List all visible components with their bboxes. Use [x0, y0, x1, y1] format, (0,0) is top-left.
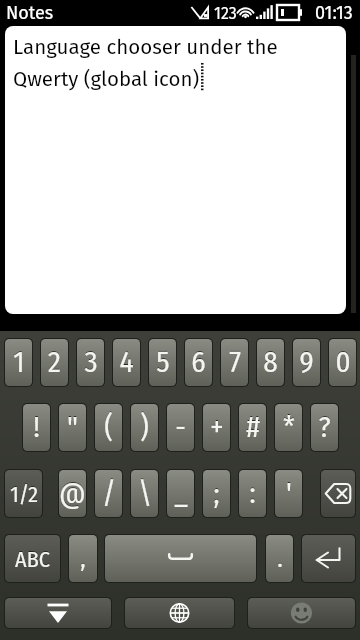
staticText: Language chooser under the	[13, 35, 278, 60]
button[interactable]: 3	[76, 338, 105, 387]
staticText: :	[249, 476, 256, 511]
staticText: 1/2	[10, 480, 38, 506]
button[interactable]: 1/2	[4, 469, 43, 518]
staticText: 5	[156, 345, 170, 380]
staticText: 2	[48, 344, 61, 379]
staticText: '	[286, 476, 292, 511]
staticText: \	[138, 476, 152, 511]
staticText: ?	[318, 410, 331, 445]
staticText: Qwerty (global icon)	[13, 67, 200, 92]
staticText: 4	[119, 345, 134, 380]
staticText: ,	[80, 543, 86, 574]
staticText: 3	[84, 344, 98, 379]
staticText: ABC	[15, 546, 50, 572]
button[interactable]: @	[58, 469, 87, 518]
staticText: .	[277, 543, 283, 574]
button[interactable]: Emoticons	[247, 597, 356, 629]
staticText: ?	[318, 409, 331, 444]
staticText: :	[249, 475, 256, 510]
staticText: 0	[335, 344, 351, 379]
staticText: 6	[191, 345, 206, 380]
staticText: ABC	[15, 545, 50, 571]
button[interactable]: ?	[310, 403, 339, 452]
staticText: 01:13	[315, 2, 353, 24]
staticText: '	[286, 475, 292, 510]
button[interactable]: 1	[4, 338, 33, 387]
button[interactable]: /	[94, 469, 123, 518]
staticText: 2	[48, 345, 61, 380]
button[interactable]: #	[238, 403, 267, 452]
staticText: 123	[214, 4, 237, 23]
staticText: @	[59, 476, 86, 511]
button[interactable]: )	[130, 403, 159, 452]
staticText: !	[33, 410, 40, 445]
staticText: 3	[84, 345, 98, 380]
staticText: !	[33, 409, 40, 444]
button[interactable]: 7	[220, 338, 249, 387]
staticText: _	[174, 476, 188, 511]
button[interactable]: !	[22, 403, 51, 452]
staticText: @	[59, 475, 86, 510]
button[interactable]: ABC	[4, 534, 61, 583]
button[interactable]: 6	[184, 338, 213, 387]
button[interactable]: (	[94, 403, 123, 452]
button[interactable]: 0	[328, 338, 357, 387]
button[interactable]: 8	[256, 338, 285, 387]
staticText: 9	[299, 344, 314, 379]
staticText: )	[140, 410, 149, 445]
staticText: ;	[213, 476, 220, 511]
button[interactable]: Enter	[301, 534, 356, 583]
staticText: ,	[80, 542, 86, 573]
staticText: ;	[213, 475, 220, 510]
staticText: *	[283, 409, 295, 444]
staticText: 8	[263, 344, 278, 379]
staticText: #	[246, 409, 260, 444]
button[interactable]: 5	[148, 338, 177, 387]
button[interactable]: Language chooser under the	[5, 26, 346, 314]
staticText: 7	[229, 345, 241, 380]
button[interactable]: -	[166, 403, 195, 452]
button[interactable]: Change language	[124, 597, 235, 629]
staticText: #	[246, 410, 260, 445]
staticText: _	[174, 475, 188, 510]
button[interactable]: +	[202, 403, 231, 452]
staticText: 0	[335, 345, 351, 380]
button[interactable]: 4	[112, 338, 141, 387]
button[interactable]: Space	[104, 534, 257, 583]
button[interactable]: '	[274, 469, 303, 518]
staticText: 8	[263, 345, 278, 380]
button[interactable]: Hide keyboard	[4, 597, 112, 629]
staticText: \	[138, 475, 152, 510]
button[interactable]: ;	[202, 469, 231, 518]
staticText: 1	[13, 345, 25, 380]
staticText: /	[102, 475, 116, 510]
button[interactable]: :	[238, 469, 267, 518]
staticText: 6	[191, 344, 206, 379]
staticText: -	[175, 410, 186, 445]
staticText: 5	[156, 344, 170, 379]
staticText: 1	[13, 344, 25, 379]
staticText: "	[67, 410, 78, 445]
staticText: +	[210, 409, 224, 444]
staticText: (	[104, 409, 113, 444]
button[interactable]: 2	[40, 338, 69, 387]
button[interactable]: _	[166, 469, 195, 518]
button[interactable]: \	[130, 469, 159, 518]
staticText: .	[277, 542, 283, 573]
button[interactable]: *	[274, 403, 303, 452]
button[interactable]: .	[265, 534, 294, 583]
button[interactable]: "	[58, 403, 87, 452]
button[interactable]: Backspace	[320, 469, 356, 518]
staticText: 9	[299, 345, 314, 380]
staticText: *	[283, 410, 295, 445]
staticText: /	[102, 476, 116, 511]
staticText: 7	[229, 344, 241, 379]
staticText: 1/2	[10, 481, 38, 507]
button[interactable]: ,	[68, 534, 98, 583]
staticText: )	[140, 409, 149, 444]
button[interactable]: 9	[292, 338, 321, 387]
staticText: 4	[119, 344, 134, 379]
staticText: -	[175, 409, 186, 444]
staticText: "	[67, 409, 78, 444]
staticText: +	[210, 410, 224, 445]
